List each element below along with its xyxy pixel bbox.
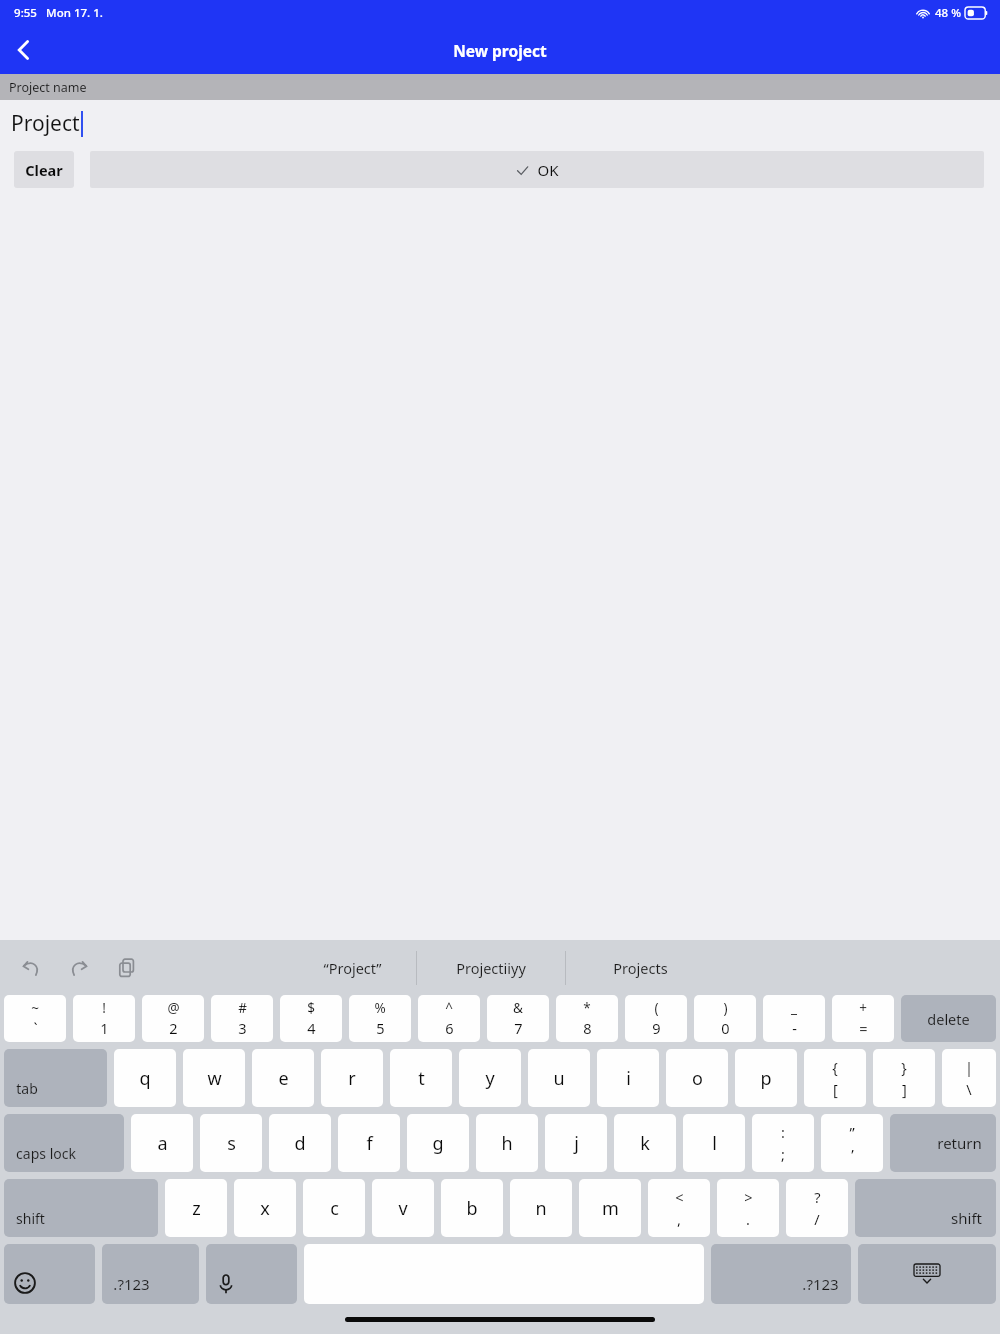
- staticText: u: [553, 1066, 565, 1091]
- button[interactable]: .?123: [102, 1244, 199, 1304]
- staticText: shift: [951, 1208, 982, 1228]
- button[interactable]: _: [763, 995, 825, 1042]
- button[interactable]: w: [183, 1049, 245, 1107]
- button[interactable]: }: [873, 1049, 935, 1107]
- button[interactable]: f: [338, 1114, 400, 1172]
- button[interactable]: q: [114, 1049, 176, 1107]
- button[interactable]: r: [321, 1049, 383, 1107]
- button[interactable]: Undo: [18, 955, 44, 981]
- button[interactable]: {: [804, 1049, 866, 1107]
- button[interactable]: #: [211, 995, 273, 1042]
- button[interactable]: “Project”: [288, 947, 416, 989]
- button[interactable]: Emoji: [4, 1244, 95, 1304]
- button[interactable]: tab: [4, 1049, 107, 1107]
- button[interactable]: &: [487, 995, 549, 1042]
- button[interactable]: return: [890, 1114, 996, 1172]
- button[interactable]: g: [407, 1114, 469, 1172]
- button[interactable]: Projects: [566, 947, 714, 989]
- staticText: ;: [781, 1144, 785, 1164]
- staticText: “Project”: [323, 958, 382, 978]
- button[interactable]: k: [614, 1114, 676, 1172]
- staticText: |: [965, 1057, 973, 1077]
- button[interactable]: u: [528, 1049, 590, 1107]
- staticText: n: [535, 1196, 547, 1221]
- staticText: Mon 17. 1.: [46, 5, 103, 21]
- button[interactable]: o: [666, 1049, 728, 1107]
- button[interactable]: OK: [90, 151, 984, 188]
- staticText: 5: [376, 1018, 385, 1038]
- button[interactable]: ^: [418, 995, 480, 1042]
- button[interactable]: Back: [0, 26, 48, 74]
- staticText: %: [374, 999, 386, 1017]
- staticText: Projectiiyy: [456, 958, 526, 978]
- button[interactable]: Hide keyboard: [858, 1244, 996, 1304]
- button[interactable]: delete: [901, 995, 996, 1042]
- button[interactable]: e: [252, 1049, 314, 1107]
- button[interactable]: shift: [4, 1179, 158, 1237]
- button[interactable]: b: [441, 1179, 503, 1237]
- button[interactable]: s: [200, 1114, 262, 1172]
- staticText: e: [278, 1066, 289, 1091]
- button[interactable]: Paste: [114, 955, 140, 981]
- button[interactable]: @: [142, 995, 204, 1042]
- staticText: q: [139, 1066, 151, 1091]
- button[interactable]: h: [476, 1114, 538, 1172]
- button[interactable]: y: [459, 1049, 521, 1107]
- staticText: \: [966, 1079, 972, 1099]
- button[interactable]: t: [390, 1049, 452, 1107]
- button[interactable]: Projectiiyy: [417, 947, 565, 989]
- button[interactable]: z: [165, 1179, 227, 1237]
- staticText: shift: [16, 1209, 45, 1228]
- staticText: ^: [445, 999, 453, 1017]
- staticText: >: [744, 1187, 753, 1207]
- button[interactable]: <: [648, 1179, 710, 1237]
- button[interactable]: p: [735, 1049, 797, 1107]
- button[interactable]: shift: [855, 1179, 996, 1237]
- button[interactable]: j: [545, 1114, 607, 1172]
- staticText: *: [583, 999, 591, 1017]
- staticText: &: [513, 999, 523, 1017]
- staticText: 1: [100, 1018, 109, 1038]
- button[interactable]: ”: [821, 1114, 883, 1172]
- button[interactable]: m: [579, 1179, 641, 1237]
- staticText: 9: [652, 1018, 661, 1038]
- button[interactable]: .?123: [711, 1244, 851, 1304]
- button[interactable]: x: [234, 1179, 296, 1237]
- button[interactable]: d: [269, 1114, 331, 1172]
- button[interactable]: +: [832, 995, 894, 1042]
- staticText: d: [294, 1131, 306, 1156]
- staticText: w: [207, 1066, 222, 1091]
- button[interactable]: :: [752, 1114, 814, 1172]
- staticText: {: [832, 1057, 838, 1077]
- staticText: -: [792, 1018, 797, 1038]
- button[interactable]: Voice input: [206, 1244, 297, 1304]
- button[interactable]: Redo: [66, 955, 92, 981]
- button[interactable]: *: [556, 995, 618, 1042]
- button[interactable]: |: [942, 1049, 996, 1107]
- button[interactable]: c: [303, 1179, 365, 1237]
- staticText: v: [398, 1196, 408, 1221]
- button[interactable]: $: [280, 995, 342, 1042]
- staticText: c: [330, 1196, 339, 1221]
- button[interactable]: caps lock: [4, 1114, 124, 1172]
- staticText: caps lock: [16, 1144, 76, 1163]
- button[interactable]: ~: [4, 995, 66, 1042]
- staticText: 4: [307, 1018, 316, 1038]
- button[interactable]: >: [717, 1179, 779, 1237]
- button[interactable]: ?: [786, 1179, 848, 1237]
- button[interactable]: (: [625, 995, 687, 1042]
- staticText: ”: [849, 1122, 855, 1142]
- button[interactable]: l: [683, 1114, 745, 1172]
- button[interactable]: n: [510, 1179, 572, 1237]
- button[interactable]: ): [694, 995, 756, 1042]
- button[interactable]: v: [372, 1179, 434, 1237]
- button[interactable]: !: [73, 995, 135, 1042]
- staticText: Project name: [9, 79, 87, 96]
- button[interactable]: i: [597, 1049, 659, 1107]
- button[interactable]: a: [131, 1114, 193, 1172]
- staticText: return: [937, 1133, 982, 1153]
- button[interactable]: Clear: [14, 151, 74, 188]
- staticText: <: [675, 1187, 684, 1207]
- button[interactable]: %: [349, 995, 411, 1042]
